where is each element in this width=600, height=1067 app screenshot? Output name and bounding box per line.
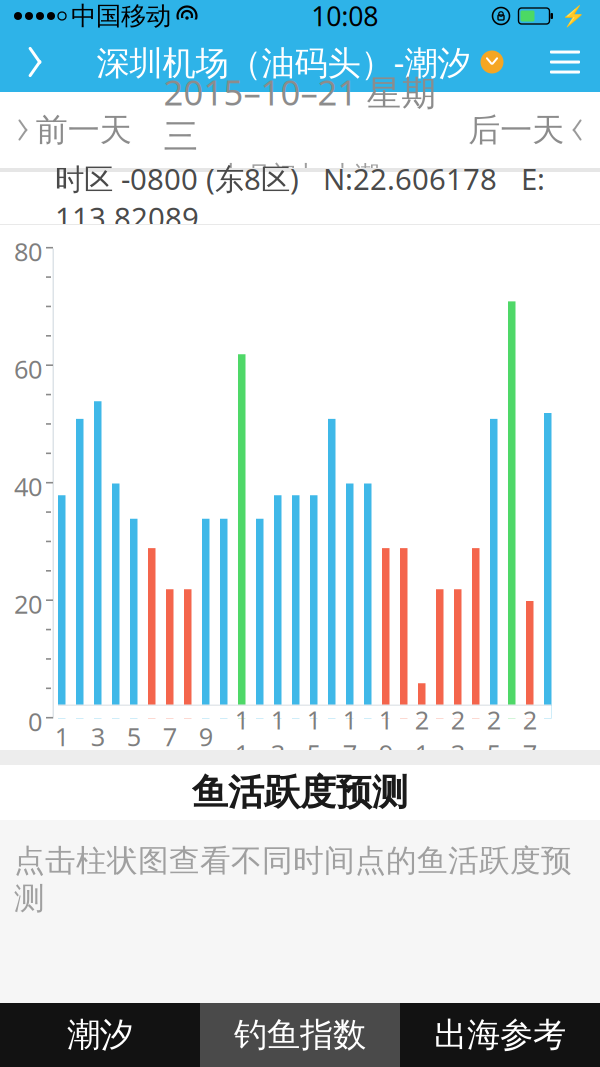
button[interactable]: Hour 3 bbox=[94, 248, 101, 718]
staticText: 80 bbox=[14, 234, 42, 268]
button[interactable]: Hour 4 bbox=[112, 248, 119, 718]
staticText: 出海参考 bbox=[434, 1014, 566, 1055]
button[interactable]: Menu bbox=[530, 32, 600, 92]
staticText: 点击柱状图查看不同时间点的鱼活跃度预测 bbox=[14, 842, 572, 917]
staticText: 5 bbox=[127, 720, 141, 753]
button[interactable]: 出海参考 bbox=[400, 1003, 600, 1067]
staticText: 0 bbox=[28, 704, 42, 738]
button[interactable]: Hour 11 bbox=[238, 248, 245, 718]
button[interactable]: Hour 24 bbox=[472, 248, 479, 718]
button[interactable]: Hour 25 bbox=[490, 248, 497, 718]
staticText: 23 bbox=[451, 703, 465, 770]
button[interactable]: Hour 13 bbox=[274, 248, 281, 718]
button[interactable]: Hour 2 bbox=[76, 248, 83, 718]
staticText: 13 bbox=[271, 703, 285, 770]
staticText: 钓鱼指数 bbox=[234, 1014, 366, 1055]
staticText: 9 bbox=[199, 720, 213, 753]
staticText: 60 bbox=[14, 352, 42, 386]
button[interactable]: 钓鱼指数 bbox=[200, 1003, 400, 1067]
button[interactable]: Hour 7 bbox=[166, 248, 173, 718]
button[interactable]: Hour 8 bbox=[184, 248, 191, 718]
button[interactable]: Hour 26 bbox=[508, 248, 515, 718]
staticText: 7 bbox=[163, 720, 177, 753]
staticText: ⚡ bbox=[561, 5, 586, 27]
staticText: 25 bbox=[487, 703, 501, 770]
button[interactable]: Hour 20 bbox=[400, 248, 407, 718]
staticText: 前一天 bbox=[36, 110, 132, 150]
staticText: 2015–10–21 星期三 bbox=[163, 69, 436, 158]
staticText: 40 bbox=[14, 469, 42, 503]
staticText: 1 bbox=[55, 720, 69, 753]
button[interactable]: 后一天 bbox=[450, 92, 600, 168]
staticText: 后一天 bbox=[468, 110, 564, 150]
staticText: 鱼活跃度预测 bbox=[192, 770, 408, 815]
staticText: 19 bbox=[379, 703, 393, 770]
button[interactable]: Hour 28 bbox=[544, 248, 551, 718]
button[interactable]: Hour 23 bbox=[454, 248, 461, 718]
button[interactable]: Hour 27 bbox=[526, 248, 533, 718]
staticText: 中国移动 bbox=[71, 0, 171, 31]
staticText: 27 bbox=[523, 703, 537, 770]
button[interactable]: Hour 12 bbox=[256, 248, 263, 718]
button[interactable]: Hour 17 bbox=[346, 248, 353, 718]
button[interactable]: Hour 14 bbox=[292, 248, 299, 718]
button[interactable]: Hour 22 bbox=[436, 248, 443, 718]
staticText: 10:08 bbox=[311, 0, 378, 34]
staticText: 潮汐 bbox=[67, 1014, 133, 1055]
staticText: 21 bbox=[415, 703, 429, 770]
button[interactable]: Hour 19 bbox=[382, 248, 389, 718]
staticText: 九月初九 小潮 bbox=[221, 160, 379, 191]
button[interactable]: Hour 16 bbox=[328, 248, 335, 718]
button[interactable]: Hour 18 bbox=[364, 248, 371, 718]
button[interactable]: 潮汐 bbox=[0, 1003, 200, 1067]
staticText: 深圳机场（油码头）-潮汐 bbox=[96, 40, 470, 84]
staticText: 3 bbox=[91, 720, 105, 753]
button[interactable]: 深圳机场（油码头）-潮汐 bbox=[96, 40, 503, 84]
staticText: 时区 -0800 (东8区) N:22.606178 E:113.82089 bbox=[55, 159, 545, 237]
button[interactable]: Hour 6 bbox=[148, 248, 155, 718]
button[interactable]: Back bbox=[0, 32, 70, 92]
button[interactable]: Hour 21 bbox=[418, 248, 425, 718]
button[interactable]: Hour 15 bbox=[310, 248, 317, 718]
staticText: 20 bbox=[14, 587, 42, 621]
button[interactable]: Hour 10 bbox=[220, 248, 227, 718]
button[interactable]: Hour 9 bbox=[202, 248, 209, 718]
button[interactable]: Hour 1 bbox=[58, 248, 65, 718]
button[interactable]: Hour 5 bbox=[130, 248, 137, 718]
staticText: 15 bbox=[307, 703, 321, 770]
staticText: 11 bbox=[235, 703, 249, 770]
staticText: 17 bbox=[343, 703, 357, 770]
button[interactable]: 前一天 bbox=[0, 92, 150, 168]
